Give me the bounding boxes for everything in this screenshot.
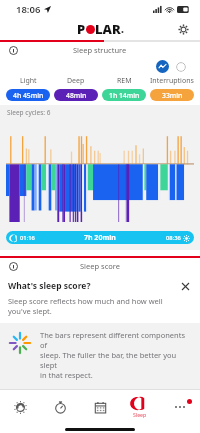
staticText: 18:06 xyxy=(16,3,41,16)
staticText: 1h 14min xyxy=(109,91,140,100)
button[interactable]: Diary xyxy=(80,389,120,425)
staticText: Light xyxy=(20,76,37,86)
staticText: Sleep cycles: 6 xyxy=(7,108,51,117)
button[interactable]: Light xyxy=(4,76,52,101)
button[interactable]: Info xyxy=(6,259,20,273)
staticText: Interruptions xyxy=(150,76,194,86)
button[interactable]: Activity xyxy=(0,389,40,425)
staticText: Deep xyxy=(67,76,85,86)
staticText: 48min xyxy=(66,91,87,100)
button[interactable]: Info xyxy=(6,43,20,57)
button[interactable]: Sleep xyxy=(120,389,160,425)
button[interactable]: More xyxy=(160,389,200,425)
button[interactable]: Settings xyxy=(174,20,192,38)
staticText: 01:16 xyxy=(20,234,35,242)
staticText: REM xyxy=(117,76,132,86)
staticText: P xyxy=(77,20,86,38)
staticText: 33min xyxy=(162,91,183,100)
staticText: 08:36 xyxy=(166,234,181,242)
button[interactable]: Deep xyxy=(52,76,100,101)
button[interactable]: Second page xyxy=(176,62,186,72)
staticText: Sleep score xyxy=(80,261,120,271)
button[interactable]: 01:16 xyxy=(6,231,194,244)
button[interactable]: Sleep structure page xyxy=(156,60,169,73)
button[interactable]: Training xyxy=(40,389,80,425)
staticText: 7h 20min xyxy=(84,233,116,243)
staticText: 4h 45min xyxy=(13,91,44,100)
button[interactable]: REM xyxy=(100,76,148,101)
button[interactable]: Interruptions xyxy=(148,76,196,101)
staticText: What's sleep score? xyxy=(8,280,178,292)
staticText: Sleep xyxy=(133,411,147,418)
staticText: Sleep structure xyxy=(73,45,127,55)
button[interactable]: Close xyxy=(178,279,192,293)
staticText: The bars represent different components … xyxy=(40,330,192,380)
staticText: Sleep score reflects how much and how we… xyxy=(8,296,163,316)
staticText: . xyxy=(121,22,124,36)
staticText: LAR xyxy=(95,20,121,38)
